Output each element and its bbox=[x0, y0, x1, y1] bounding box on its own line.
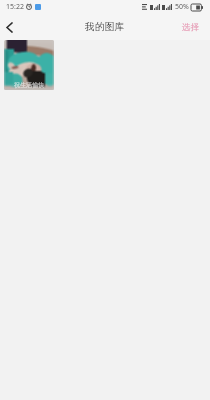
staticText: 50% bbox=[175, 2, 189, 12]
staticText: 选择 bbox=[182, 22, 199, 33]
button[interactable]: Back bbox=[0, 14, 18, 40]
staticText: 我的图库 bbox=[85, 21, 125, 33]
button[interactable]: 选择 bbox=[171, 14, 210, 40]
staticText: 15:22 bbox=[6, 2, 24, 12]
button[interactable]: Photo bbox=[4, 40, 54, 90]
staticText: 祝生活愉快 bbox=[4, 81, 54, 89]
